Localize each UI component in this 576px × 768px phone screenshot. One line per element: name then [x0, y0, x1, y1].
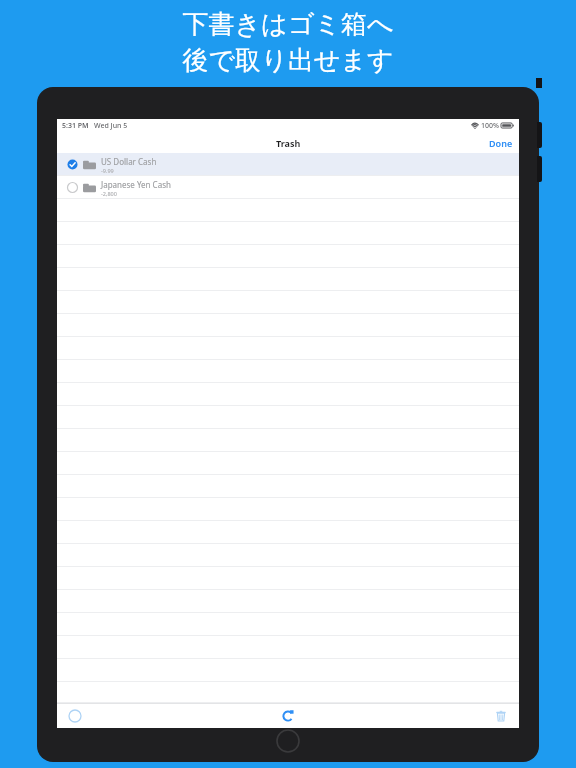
button[interactable]: Done	[487, 135, 515, 151]
button[interactable]: Select all	[68, 709, 82, 723]
button[interactable]: Home	[276, 729, 300, 753]
staticText: 5:31 PM	[62, 121, 89, 131]
staticText: -2,800	[101, 190, 117, 197]
staticText: US Dollar Cash	[101, 156, 157, 167]
staticText: -9.99	[101, 167, 114, 174]
staticText: 後で取り出せます	[182, 44, 394, 77]
button[interactable]: Japanese Yen Cash	[57, 176, 519, 199]
button[interactable]: US Dollar Cash	[57, 153, 519, 176]
staticText: Done	[489, 137, 513, 149]
staticText: Japanese Yen Cash	[101, 179, 171, 190]
staticText: Wed Jun 5	[94, 121, 128, 131]
staticText: 100%	[481, 121, 499, 131]
staticText: Trash	[276, 137, 301, 149]
button[interactable]: Delete permanently	[494, 709, 508, 723]
button[interactable]: Restore	[281, 709, 295, 723]
staticText: 下書きはゴミ箱へ	[182, 8, 394, 41]
